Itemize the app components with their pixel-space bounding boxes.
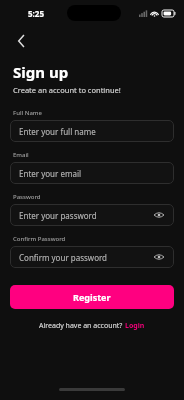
staticText: Create an account to continue! bbox=[13, 85, 121, 95]
staticText: Confirm your password bbox=[19, 252, 108, 263]
button[interactable]: Back bbox=[8, 28, 34, 54]
button[interactable]: Enter your email bbox=[10, 162, 174, 184]
staticText: 5:25 bbox=[28, 8, 44, 19]
staticText: Sign up bbox=[13, 62, 69, 82]
button[interactable]: Confirm your password bbox=[10, 246, 174, 268]
button[interactable]: Login bbox=[125, 321, 145, 331]
staticText: Enter your full name bbox=[19, 126, 96, 137]
staticText: Login bbox=[125, 321, 145, 331]
staticText: Register bbox=[73, 291, 111, 303]
staticText: Already have an account? bbox=[39, 321, 125, 331]
button[interactable]: Register bbox=[10, 285, 174, 309]
button[interactable]: Toggle password visibility bbox=[153, 209, 165, 221]
staticText: Enter your password bbox=[19, 210, 97, 221]
button[interactable]: Enter your full name bbox=[10, 120, 174, 142]
staticText: Full Name bbox=[13, 109, 42, 117]
staticText: Enter your email bbox=[19, 168, 82, 179]
staticText: Confirm Password bbox=[13, 235, 66, 243]
button[interactable]: Toggle password visibility bbox=[153, 251, 165, 263]
button[interactable]: Enter your password bbox=[10, 204, 174, 226]
staticText: Email bbox=[13, 151, 29, 159]
staticText: Password bbox=[13, 193, 41, 201]
